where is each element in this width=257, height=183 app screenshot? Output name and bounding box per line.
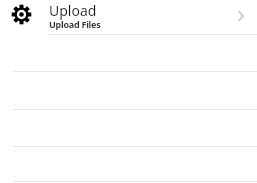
other: Settings — [12, 5, 31, 24]
button[interactable]: Settings — [0, 0, 257, 34]
other: Open Upload Files — [238, 11, 244, 21]
staticText: Upload Files — [49, 18, 101, 30]
staticText: Upload — [49, 1, 97, 20]
